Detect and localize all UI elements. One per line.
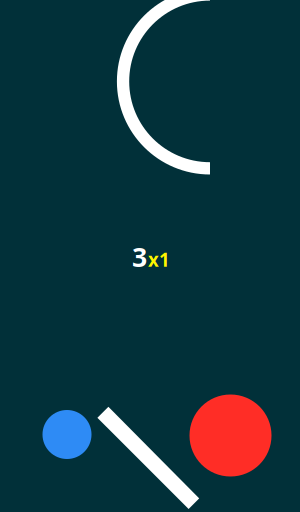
staticText: 3 [132, 239, 147, 274]
staticText: x1 [148, 247, 170, 272]
button[interactable]: Red ball [189, 394, 271, 476]
button[interactable]: Paddle [0, 0, 300, 512]
button[interactable]: Blue ball [42, 410, 91, 459]
button[interactable]: Play field [0, 0, 300, 512]
